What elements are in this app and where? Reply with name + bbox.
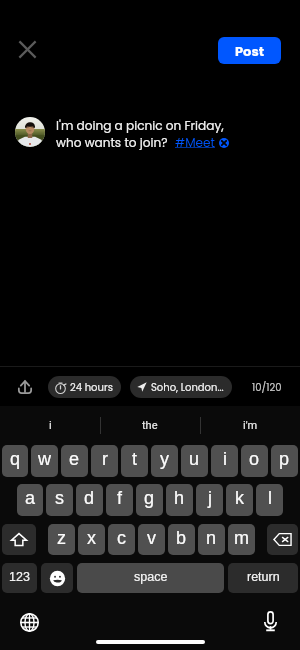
button[interactable]: Shift	[2, 524, 36, 555]
staticText: 24 hours	[70, 380, 113, 394]
staticText: h	[174, 488, 185, 508]
staticText: z	[57, 528, 66, 548]
staticText: d	[84, 488, 95, 508]
button[interactable]: Share	[14, 376, 36, 398]
staticText: r	[102, 449, 108, 469]
button[interactable]: k	[226, 484, 253, 516]
staticText: f	[117, 488, 123, 508]
button[interactable]: e	[61, 445, 88, 477]
staticText: c	[117, 528, 126, 548]
button[interactable]: Soho, London...	[130, 376, 232, 398]
button[interactable]: Voice input	[264, 611, 277, 632]
button[interactable]: Backspace	[267, 524, 298, 555]
staticText: space	[134, 570, 168, 584]
button[interactable]: space	[77, 563, 224, 593]
staticText: i	[49, 419, 52, 432]
staticText: y	[160, 449, 169, 469]
button[interactable]: 24 hours	[48, 376, 121, 398]
staticText: g	[144, 488, 155, 508]
staticText: j	[208, 488, 212, 508]
staticText: i'm	[243, 419, 258, 432]
staticText: w	[38, 449, 51, 469]
staticText: k	[235, 488, 244, 508]
button[interactable]: b	[168, 524, 195, 555]
staticText: p	[279, 449, 290, 469]
button[interactable]: h	[166, 484, 193, 516]
staticText: u	[189, 449, 200, 469]
button[interactable]: return	[228, 563, 298, 593]
button[interactable]: r	[91, 445, 118, 477]
staticText: Soho, London...	[151, 380, 224, 394]
staticText: v	[147, 528, 156, 548]
button[interactable]: v	[138, 524, 165, 555]
button[interactable]: o	[241, 445, 268, 477]
button[interactable]: p	[271, 445, 298, 477]
staticText: l	[268, 488, 272, 508]
staticText: n	[206, 528, 217, 548]
button[interactable]: y	[151, 445, 178, 477]
button[interactable]: Post	[218, 37, 281, 64]
button[interactable]: i'm	[200, 407, 300, 443]
staticText: e	[69, 449, 80, 469]
button[interactable]: Change keyboard language	[20, 613, 39, 632]
button[interactable]: n	[198, 524, 225, 555]
button[interactable]: t	[121, 445, 148, 477]
button[interactable]: Emoji	[41, 563, 73, 593]
button[interactable]: g	[136, 484, 163, 516]
staticText: 10/120	[252, 380, 282, 394]
button[interactable]: w	[31, 445, 58, 477]
staticText: Post	[235, 42, 264, 60]
button[interactable]: i	[211, 445, 238, 477]
button[interactable]: #Meet	[175, 134, 215, 151]
button[interactable]: Profile photo	[15, 117, 45, 147]
staticText: m	[234, 528, 249, 548]
staticText: q	[10, 449, 21, 469]
button[interactable]: u	[181, 445, 208, 477]
staticText: a	[25, 488, 36, 508]
button[interactable]: Remove tag	[219, 138, 229, 148]
staticText: s	[55, 488, 64, 508]
staticText: b	[176, 528, 187, 548]
button[interactable]: 123	[2, 563, 37, 593]
staticText: x	[87, 528, 96, 548]
button[interactable]: j	[196, 484, 223, 516]
staticText: 123	[9, 570, 30, 584]
button[interactable]: Close	[16, 38, 39, 61]
button[interactable]: f	[106, 484, 133, 516]
button[interactable]: c	[108, 524, 135, 555]
staticText: o	[249, 449, 260, 469]
button[interactable]: z	[48, 524, 75, 555]
button[interactable]: m	[228, 524, 255, 555]
staticText: I'm doing a picnic on Friday,	[56, 117, 224, 134]
staticText: who wants to join?	[56, 134, 175, 151]
staticText: the	[142, 419, 158, 432]
button[interactable]: a	[17, 484, 43, 516]
button[interactable]: l	[256, 484, 283, 516]
button[interactable]: the	[100, 407, 200, 443]
staticText: t	[132, 449, 138, 469]
button[interactable]: q	[2, 445, 28, 477]
button[interactable]: s	[46, 484, 73, 516]
staticText: return	[247, 570, 280, 584]
staticText: i	[223, 449, 227, 469]
button[interactable]: i	[0, 407, 100, 443]
button[interactable]: d	[76, 484, 103, 516]
button[interactable]: x	[78, 524, 105, 555]
